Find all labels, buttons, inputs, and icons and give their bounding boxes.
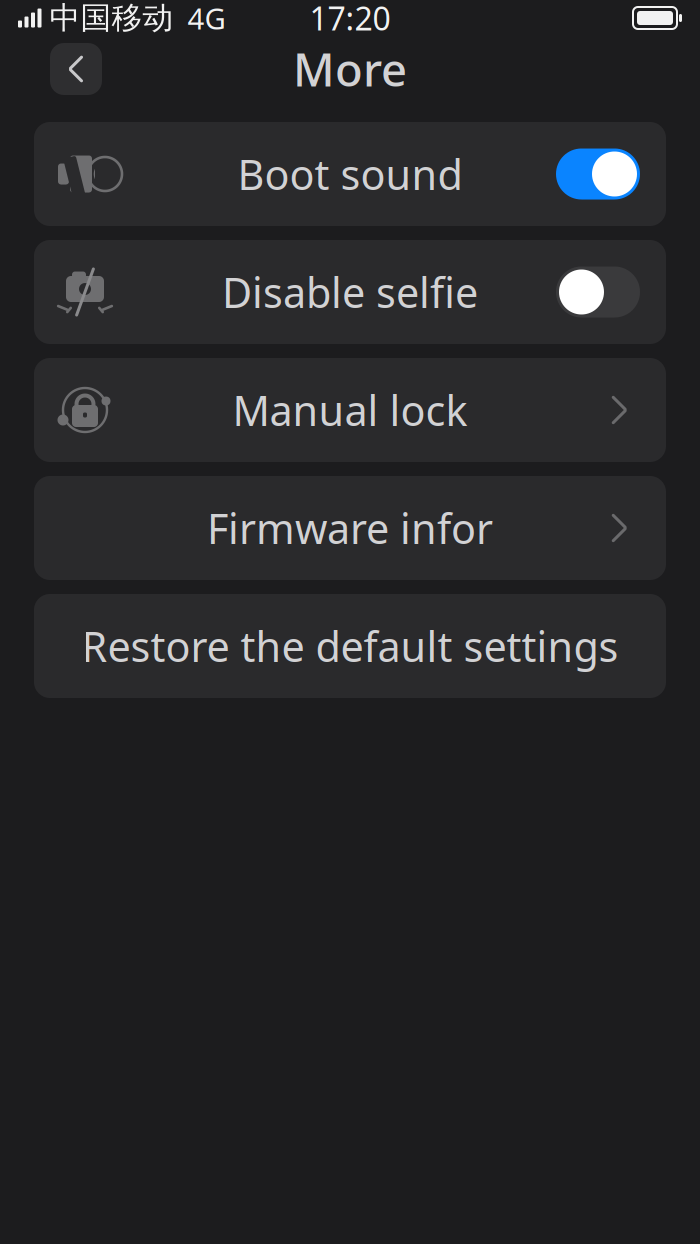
button[interactable]: Boot sound	[34, 122, 666, 226]
staticText: Firmware infor	[207, 501, 493, 555]
button[interactable]: Firmware infor	[34, 476, 666, 580]
staticText: 中国移动	[49, 0, 173, 37]
staticText: Restore the default settings	[81, 619, 618, 673]
staticText: 17:20	[309, 0, 390, 39]
button[interactable]: Manual lock	[34, 358, 666, 462]
staticText: Boot sound	[237, 147, 462, 201]
staticText: 4G	[187, 0, 225, 37]
button[interactable]: Back	[50, 43, 102, 95]
staticText: More	[293, 39, 407, 99]
staticText: Disable selfie	[222, 265, 478, 319]
button[interactable]: Restore the default settings	[34, 594, 666, 698]
button[interactable]: Disable selfie	[34, 240, 666, 344]
staticText: Manual lock	[232, 383, 467, 437]
